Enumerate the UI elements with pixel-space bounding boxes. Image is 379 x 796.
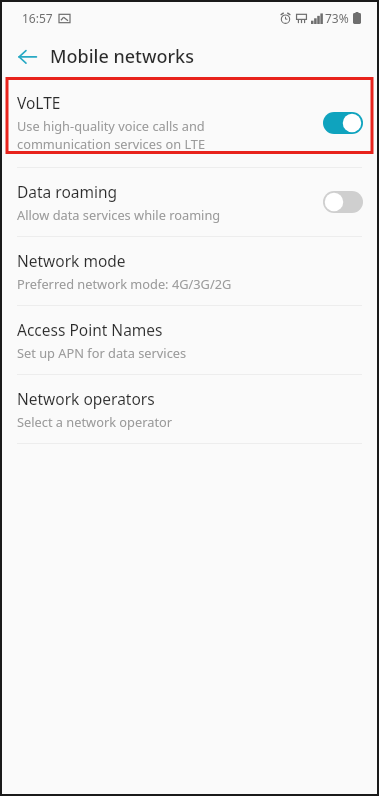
button[interactable]: VoLTE switch (323, 112, 363, 134)
button[interactable]: Network mode (2, 237, 377, 305)
button[interactable]: Back (10, 39, 44, 73)
staticText: 73% (325, 10, 349, 26)
staticText: Network mode (17, 250, 126, 271)
staticText: Use high-quality voice calls and communi… (17, 117, 254, 153)
staticText: Network operators (17, 388, 155, 409)
staticText: Data roaming (17, 181, 118, 202)
staticText: 16:57 (22, 10, 53, 26)
button[interactable]: Access Point Names (2, 306, 377, 374)
staticText: VoLTE (17, 92, 61, 113)
staticText: Access Point Names (17, 319, 163, 340)
staticText: Preferred network mode: 4G/3G/2G (17, 275, 363, 292)
staticText: Allow data services while roaming (17, 206, 313, 223)
staticText: Mobile networks (50, 44, 194, 69)
staticText: Select a network operator (17, 413, 363, 430)
button[interactable]: Data roaming switch (323, 191, 363, 213)
button[interactable]: Data roaming (2, 168, 377, 236)
button[interactable]: VoLTE (2, 78, 377, 167)
button[interactable]: Network operators (2, 375, 377, 443)
staticText: Set up APN for data services (17, 344, 363, 361)
